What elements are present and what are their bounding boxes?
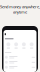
button[interactable]: Quick action <box>28 42 36 48</box>
button[interactable]: Transaction <box>3 56 36 59</box>
button[interactable]: Quick action <box>4 42 12 48</box>
staticText: Send money anywhere, <box>0 4 40 9</box>
staticText: anytime <box>13 9 27 15</box>
button[interactable]: Quick action <box>12 42 20 48</box>
button[interactable]: Quick action <box>20 42 28 48</box>
button[interactable]: Transaction <box>3 66 36 69</box>
button[interactable]: Transaction <box>3 61 36 64</box>
